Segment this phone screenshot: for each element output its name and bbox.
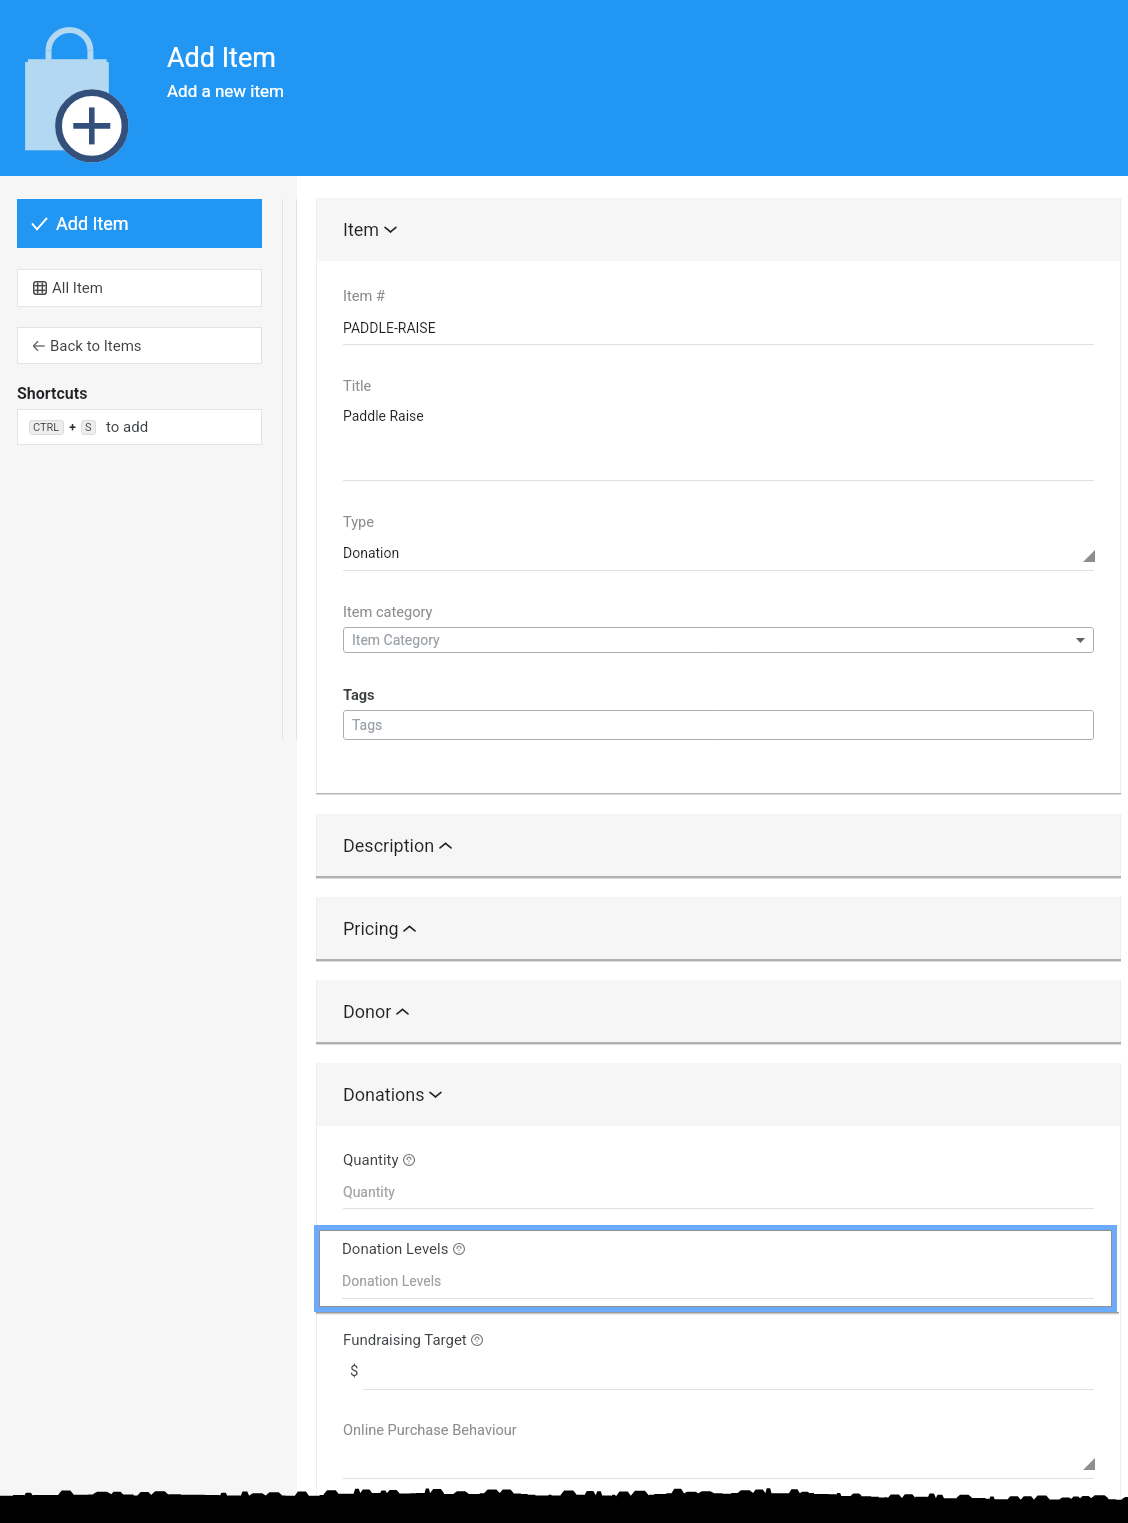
- button[interactable]: Back: [17, 327, 262, 364]
- staticText: S: [85, 421, 92, 434]
- staticText: +: [69, 420, 77, 435]
- other: Back: [33, 340, 45, 352]
- staticText: Donation: [343, 545, 400, 561]
- staticText: Donations: [343, 1084, 425, 1105]
- staticText: Quantity: [343, 1184, 395, 1200]
- staticText: Donation Levels: [342, 1273, 442, 1289]
- staticText: Quantity: [343, 1151, 399, 1169]
- button[interactable]: Item Category: [343, 627, 1094, 653]
- other: Help: [453, 1243, 465, 1255]
- staticText: Tags: [343, 686, 375, 703]
- other: All items: [33, 281, 47, 295]
- staticText: to add: [106, 418, 149, 436]
- staticText: Pricing: [343, 918, 399, 939]
- button[interactable]: All items: [17, 269, 262, 307]
- button[interactable]: Description: [317, 814, 1120, 877]
- button[interactable]: Donor: [317, 980, 1120, 1043]
- button[interactable]: Donation Levels: [319, 1230, 1112, 1307]
- staticText: Donation Levels: [342, 1240, 449, 1258]
- button[interactable]: Donations: [317, 1063, 1120, 1126]
- staticText: CTRL: [33, 421, 60, 434]
- staticText: Item category: [343, 603, 433, 620]
- button[interactable]: Add Item: [17, 199, 262, 248]
- staticText: Tags: [352, 717, 383, 733]
- button[interactable]: Item: [317, 198, 1120, 261]
- staticText: Item Category: [352, 632, 440, 648]
- other: Help: [403, 1154, 415, 1166]
- staticText: Back to Items: [50, 337, 142, 355]
- staticText: Item #: [343, 287, 385, 304]
- staticText: PADDLE-RAISE: [343, 320, 436, 336]
- staticText: Add Item: [167, 42, 276, 74]
- staticText: Description: [343, 835, 435, 856]
- staticText: Fundraising Target: [343, 1331, 467, 1349]
- staticText: Title: [343, 377, 372, 394]
- staticText: Add Item: [56, 213, 129, 234]
- staticText: Paddle Raise: [343, 408, 424, 424]
- staticText: $: [350, 1362, 359, 1380]
- staticText: Donor: [343, 1001, 392, 1022]
- staticText: Add a new item: [167, 81, 284, 101]
- staticText: Online Purchase Behaviour: [343, 1421, 517, 1438]
- staticText: Type: [343, 513, 375, 530]
- button[interactable]: Tags: [343, 710, 1094, 740]
- staticText: Item: [343, 219, 380, 240]
- other: Help: [471, 1334, 483, 1346]
- button[interactable]: Pricing: [317, 897, 1120, 960]
- staticText: All Item: [52, 279, 103, 297]
- button[interactable]: CTRL: [17, 409, 262, 445]
- staticText: Shortcuts: [17, 384, 88, 403]
